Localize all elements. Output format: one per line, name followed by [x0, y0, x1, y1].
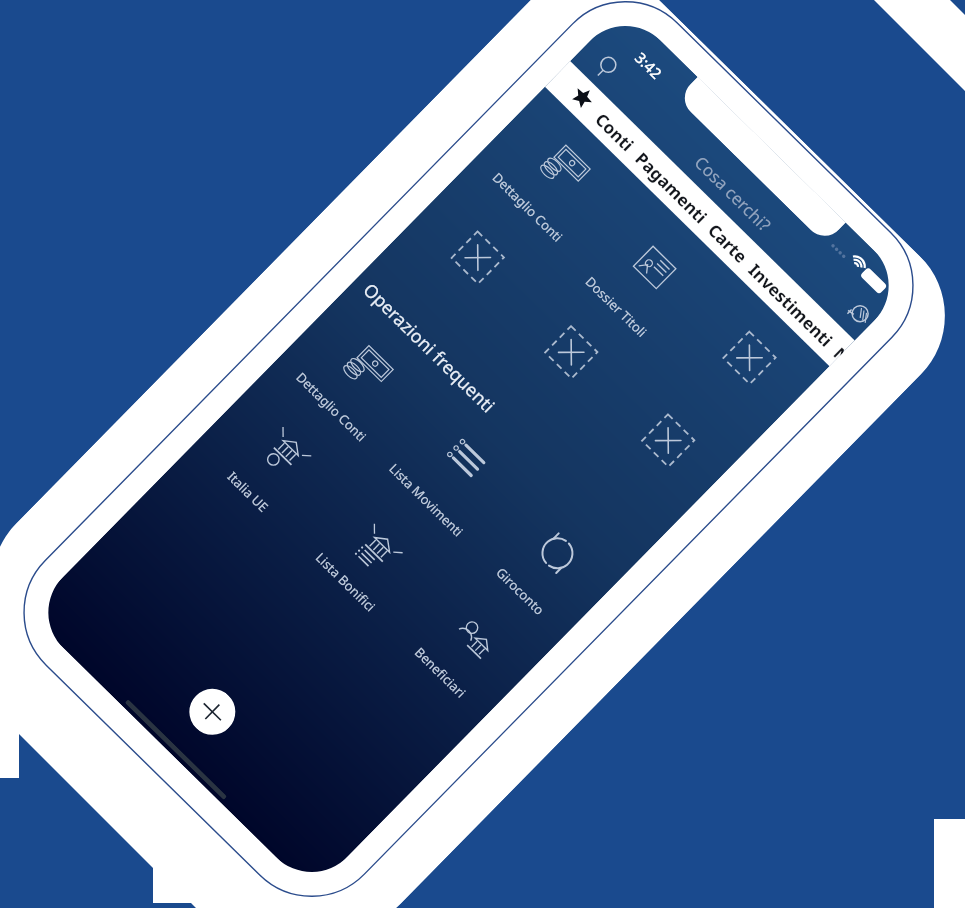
button[interactable]: Azione: [346, 519, 408, 581]
button[interactable]: Azione: [442, 608, 504, 670]
button[interactable]: Azione: [447, 226, 509, 289]
button[interactable]: Azione: [533, 139, 595, 201]
staticText: Conti: [590, 108, 639, 157]
button[interactable]: Azione: [718, 327, 781, 389]
button[interactable]: Azione: [255, 422, 317, 484]
staticText: Investimenti: [744, 259, 838, 351]
staticText: Cosa cerchi?: [690, 151, 776, 236]
button[interactable]: Conti: [590, 108, 647, 164]
staticText: Lista Bonifici: [130, 532, 396, 800]
button[interactable]: Azione: [336, 339, 398, 401]
staticText: Lista Movimenti: [130, 450, 477, 800]
button[interactable]: Carte: [703, 219, 760, 275]
staticText: Beneficiari: [223, 622, 491, 892]
button[interactable]: Azione: [623, 236, 686, 298]
staticText: Ne: [829, 342, 849, 363]
staticText: Operazioni frequenti: [358, 278, 500, 418]
button[interactable]: Pagamenti: [630, 147, 719, 235]
staticText: Dettaglio Conti: [35, 157, 578, 707]
staticText: 3:42: [631, 48, 666, 83]
button[interactable]: Ne: [829, 342, 849, 363]
button[interactable]: Azione: [540, 321, 602, 383]
staticText: Dossier Titoli: [130, 257, 667, 800]
button[interactable]: Azione: [637, 409, 699, 472]
button[interactable]: Azione: [526, 522, 588, 584]
staticText: Pagamenti: [630, 147, 712, 228]
button[interactable]: Investimenti: [744, 259, 845, 358]
staticText: Dettaglio Conti: [35, 357, 382, 707]
button[interactable]: Aggiungi: [180, 679, 245, 744]
staticText: Giroconto: [223, 541, 571, 892]
staticText: Italia UE: [35, 442, 298, 707]
staticText: Carte: [703, 219, 753, 268]
button[interactable]: Azione: [435, 428, 497, 490]
